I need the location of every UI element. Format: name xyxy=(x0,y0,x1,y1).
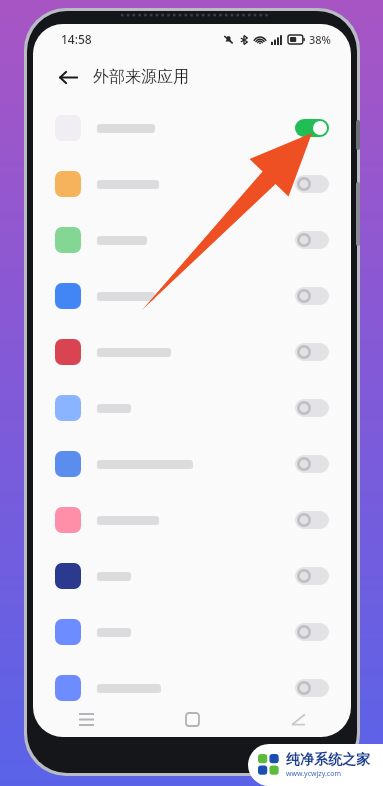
button[interactable]: Off xyxy=(295,623,329,641)
button[interactable]: On xyxy=(33,100,351,156)
button[interactable]: Off xyxy=(295,175,329,193)
button[interactable]: Back xyxy=(283,704,313,734)
button[interactable]: Off xyxy=(33,604,351,660)
staticText: www.ycwjzy.com xyxy=(286,769,341,779)
staticText: 纯净系统之家 xyxy=(286,751,370,769)
button[interactable]: Off xyxy=(295,399,329,417)
staticText: 38% xyxy=(309,32,331,47)
button[interactable]: Off xyxy=(295,567,329,585)
button[interactable]: On xyxy=(295,119,329,137)
button[interactable]: Back xyxy=(51,60,85,94)
staticText: 外部来源应用 xyxy=(93,67,189,87)
button[interactable]: Recents xyxy=(71,704,101,734)
button[interactable]: Off xyxy=(295,343,329,361)
button[interactable]: Off xyxy=(33,380,351,436)
button[interactable]: Off xyxy=(295,511,329,529)
button[interactable]: Off xyxy=(33,548,351,604)
button[interactable]: Off xyxy=(295,231,329,249)
button[interactable]: Off xyxy=(33,324,351,380)
button[interactable]: Off xyxy=(33,212,351,268)
button[interactable]: Off xyxy=(33,268,351,324)
button[interactable]: Off xyxy=(33,660,351,716)
button[interactable]: Home xyxy=(177,704,207,734)
button[interactable]: Off xyxy=(295,455,329,473)
staticText: 14:58 xyxy=(61,31,92,47)
button[interactable]: Off xyxy=(295,287,329,305)
button[interactable]: Off xyxy=(295,679,329,697)
button[interactable]: Off xyxy=(33,436,351,492)
button[interactable]: Off xyxy=(33,156,351,212)
button[interactable]: Off xyxy=(33,492,351,548)
